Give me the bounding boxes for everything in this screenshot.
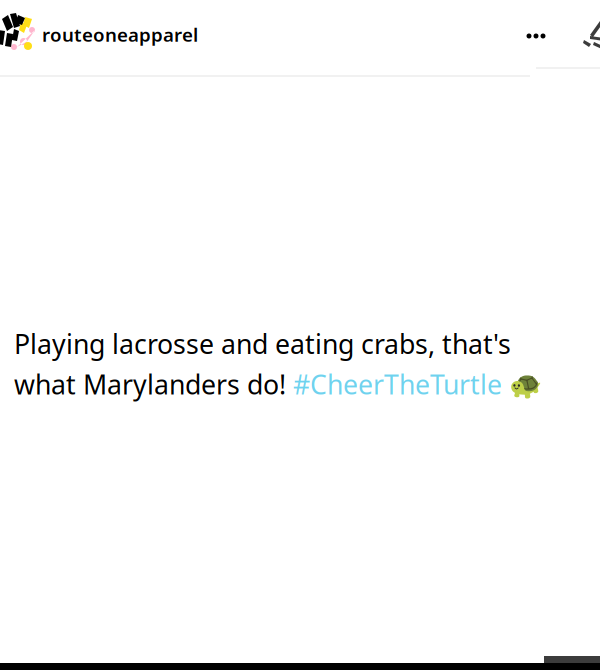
button[interactable]: routeoneapparel <box>0 11 208 61</box>
staticText: #CheerTheTurtle <box>293 366 502 402</box>
button[interactable]: More options <box>514 14 558 58</box>
staticText: what Marylanders do! <box>14 366 293 402</box>
staticText: 🐢 <box>502 366 542 402</box>
staticText: Playing lacrosse and eating crabs, that'… <box>14 326 511 361</box>
staticText: routeoneapparel <box>42 22 198 47</box>
